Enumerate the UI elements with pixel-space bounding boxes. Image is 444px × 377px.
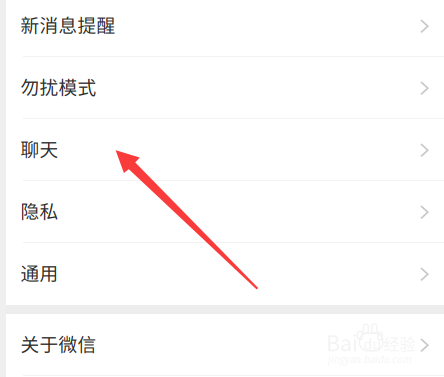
button[interactable]: 聊天	[6, 119, 444, 181]
staticText: 通用	[20, 259, 58, 286]
button[interactable]: 新消息提醒	[6, 0, 444, 57]
staticText: Bai	[326, 326, 358, 357]
button[interactable]: 勿扰模式	[6, 57, 444, 119]
button[interactable]: 关于微信	[6, 314, 444, 376]
staticText: 聊天	[20, 135, 58, 162]
staticText: 关于微信	[20, 330, 96, 357]
staticText: 勿扰模式	[20, 73, 96, 100]
staticText: du	[363, 333, 381, 354]
staticText: 隐私	[20, 197, 58, 224]
staticText: 新消息提醒	[20, 11, 115, 38]
button[interactable]: 隐私	[6, 181, 444, 243]
staticText: 经验	[383, 332, 415, 355]
button[interactable]: 通用	[6, 243, 444, 305]
